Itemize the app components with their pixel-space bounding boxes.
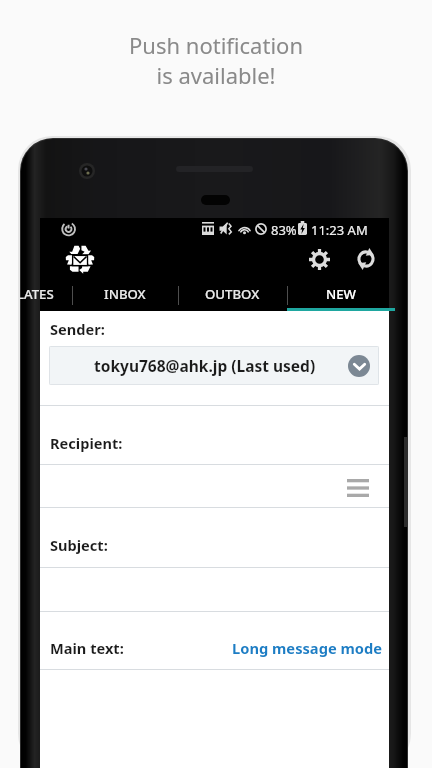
staticText: 83%	[271, 221, 297, 239]
button[interactable]: tokyu768@ahk.jp (Last used)	[49, 346, 379, 385]
staticText: Main text:	[50, 638, 124, 658]
staticText: is available!	[156, 60, 276, 90]
staticText: NEW	[326, 285, 356, 303]
button[interactable]: Open app menu	[62, 241, 98, 277]
staticText: tokyu768@ahk.jp (Last used)	[94, 355, 316, 376]
staticText: Sender:	[50, 319, 105, 339]
button[interactable]: Choose recipient	[341, 471, 375, 505]
staticText: Subject:	[50, 535, 108, 555]
staticText: 11:23 AM	[311, 221, 368, 239]
staticText: OUTBOX	[205, 285, 260, 303]
button[interactable]: Long message mode	[232, 638, 383, 658]
button[interactable]: NEW	[287, 279, 395, 308]
staticText: Long message mode	[232, 638, 383, 658]
staticText: INBOX	[104, 285, 146, 303]
staticText: Push notification	[129, 30, 303, 60]
staticText: Recipient:	[50, 433, 123, 453]
button[interactable]: Refresh	[348, 241, 384, 277]
staticText: TEMPLATES	[20, 285, 54, 303]
button[interactable]: Settings	[301, 241, 337, 277]
button[interactable]: OUTBOX	[178, 279, 287, 308]
button[interactable]: INBOX	[72, 279, 178, 308]
button[interactable]: TEMPLATES	[20, 279, 72, 308]
